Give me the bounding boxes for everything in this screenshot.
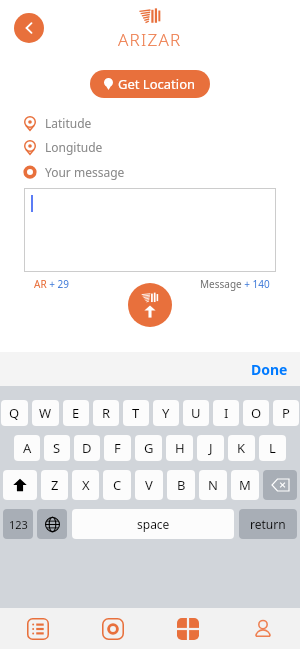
staticText: E xyxy=(72,404,80,422)
button[interactable] xyxy=(24,188,276,272)
staticText: Message + 140 xyxy=(200,277,270,291)
staticText: A xyxy=(23,439,32,457)
button[interactable]: M xyxy=(231,470,259,500)
button[interactable]: Y xyxy=(153,400,179,426)
staticText: N xyxy=(208,476,218,494)
button[interactable]: Latitude xyxy=(24,113,92,133)
staticText: C xyxy=(113,476,122,494)
staticText: V xyxy=(145,476,153,494)
button[interactable]: K xyxy=(228,435,255,461)
staticText: R xyxy=(102,404,111,422)
staticText: P xyxy=(282,404,290,422)
staticText: M xyxy=(239,476,251,494)
button[interactable]: Profile xyxy=(225,608,300,649)
button[interactable]: P xyxy=(273,400,299,426)
button[interactable]: G xyxy=(135,435,162,461)
staticText: Latitude xyxy=(45,115,92,131)
button[interactable]: L xyxy=(259,435,286,461)
button[interactable]: Your message xyxy=(24,162,125,182)
staticText: I xyxy=(224,404,229,422)
staticText: X xyxy=(82,476,90,494)
button[interactable]: Get Location xyxy=(90,70,210,98)
staticText: U xyxy=(191,404,201,422)
button[interactable]: Backspace xyxy=(263,470,297,500)
button[interactable]: Shift xyxy=(3,470,37,500)
button[interactable]: E xyxy=(63,400,89,426)
button[interactable]: C xyxy=(103,470,131,500)
staticText: return xyxy=(250,516,286,532)
staticText: S xyxy=(53,439,61,457)
staticText: J xyxy=(209,439,213,457)
staticText: W xyxy=(39,404,52,422)
button[interactable]: V xyxy=(135,470,163,500)
staticText: D xyxy=(82,439,92,457)
button[interactable]: Back xyxy=(14,13,44,43)
staticText: O xyxy=(251,404,262,422)
button[interactable]: N xyxy=(199,470,227,500)
staticText: L xyxy=(269,439,276,457)
staticText: T xyxy=(132,404,140,422)
button[interactable]: Change keyboard xyxy=(37,509,67,539)
staticText: Z xyxy=(51,476,59,494)
button[interactable]: W xyxy=(32,400,59,426)
button[interactable]: S xyxy=(44,435,70,461)
staticText: Get Location xyxy=(118,75,196,93)
button[interactable]: R xyxy=(93,400,119,426)
staticText: Your message xyxy=(45,164,125,180)
staticText: Y xyxy=(162,404,170,422)
button[interactable]: F xyxy=(104,435,131,461)
button[interactable]: Longitude xyxy=(24,137,103,157)
staticText: 123 xyxy=(9,517,28,532)
staticText: B xyxy=(177,476,186,494)
button[interactable]: J xyxy=(197,435,224,461)
staticText: K xyxy=(237,439,246,457)
staticText: F xyxy=(114,439,121,457)
button[interactable]: I xyxy=(213,400,239,426)
button[interactable]: Z xyxy=(41,470,68,500)
staticText: ARIZAR xyxy=(118,28,182,51)
button[interactable]: Done xyxy=(239,354,300,385)
button[interactable]: O xyxy=(243,400,269,426)
button[interactable]: return xyxy=(239,509,297,539)
staticText: Q xyxy=(9,404,20,422)
staticText: Done xyxy=(251,360,288,379)
staticText: G xyxy=(144,439,154,457)
button[interactable]: H xyxy=(166,435,193,461)
button[interactable]: X xyxy=(72,470,99,500)
staticText: Longitude xyxy=(45,139,103,155)
button[interactable]: Record xyxy=(75,608,150,649)
button[interactable]: space xyxy=(72,509,234,539)
button[interactable]: D xyxy=(74,435,100,461)
staticText: space xyxy=(137,516,170,532)
button[interactable]: List xyxy=(0,608,75,649)
button[interactable]: B xyxy=(167,470,195,500)
button[interactable]: Q xyxy=(1,400,28,426)
staticText: AR + 29 xyxy=(34,277,69,291)
button[interactable]: 123 xyxy=(3,509,33,539)
button[interactable]: T xyxy=(123,400,149,426)
button[interactable]: A xyxy=(14,435,40,461)
button[interactable]: Send xyxy=(128,283,172,327)
staticText: H xyxy=(175,439,185,457)
button[interactable]: Grid xyxy=(150,608,225,649)
button[interactable]: U xyxy=(183,400,209,426)
